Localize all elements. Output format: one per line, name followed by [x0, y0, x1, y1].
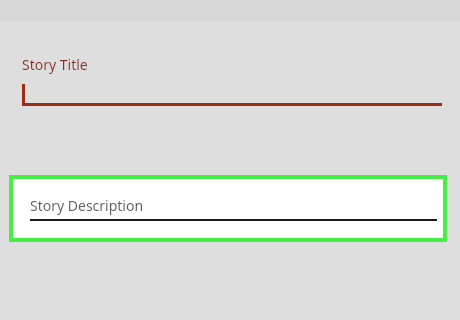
button[interactable]: Story Description [9, 175, 447, 242]
staticText: Story Description [30, 196, 144, 215]
button[interactable]: Story Title [0, 40, 460, 112]
staticText: Story Title [22, 55, 88, 74]
